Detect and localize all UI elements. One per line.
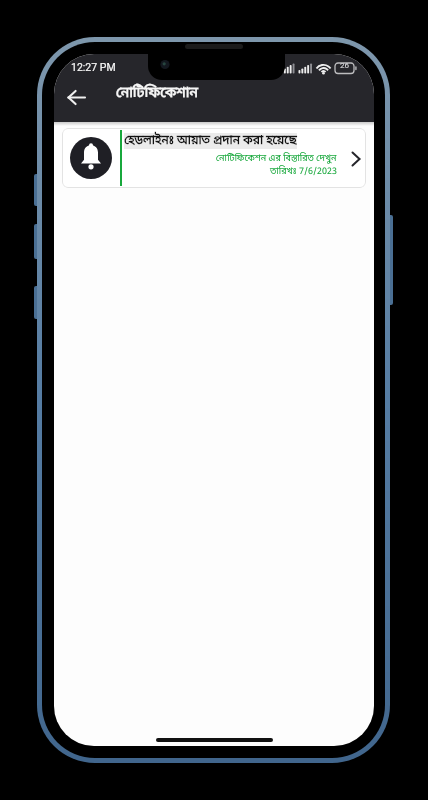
staticText: তারিখঃ 7/6/2023 (270, 166, 337, 178)
staticText: নোটিফিকেশান (116, 84, 198, 103)
staticText: 12:27 PM (71, 61, 116, 73)
staticText: নোটিফিকেশন এর বিস্তারিত দেখুন (216, 153, 337, 165)
staticText: 26 (340, 61, 349, 70)
button[interactable]: হেডলাইনঃ আয়াত প্রদান করা হয়েছে (62, 128, 366, 188)
button[interactable] (67, 91, 89, 111)
staticText: হেডলাইনঃ আয়াত প্রদান করা হয়েছে (124, 133, 297, 149)
